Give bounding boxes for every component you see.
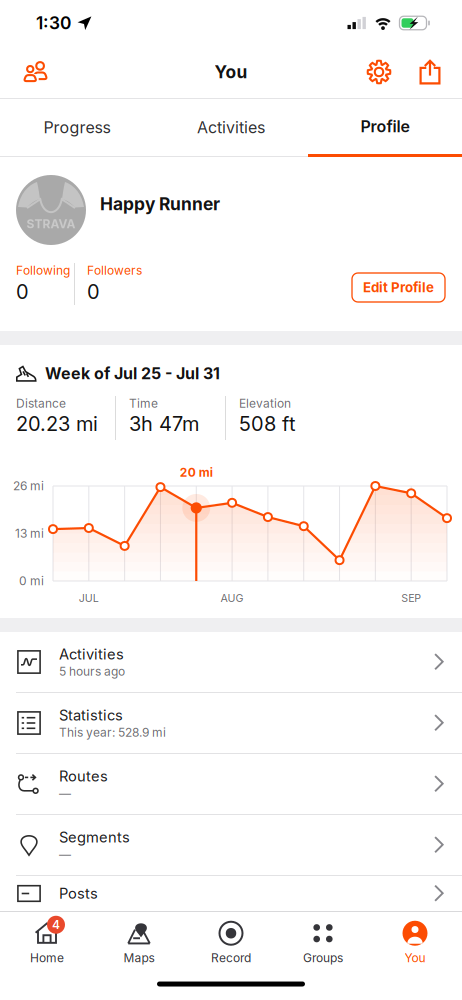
staticText: 20 mi — [180, 465, 213, 480]
staticText: Segments — [59, 828, 130, 846]
button[interactable]: Posts — [0, 876, 462, 911]
staticText: 0 mi — [19, 574, 44, 588]
staticText: Progress — [43, 118, 110, 137]
staticText: You — [214, 61, 247, 82]
staticText: Home — [30, 951, 64, 965]
staticText: Elevation — [239, 396, 291, 410]
staticText: STRAVA — [26, 217, 75, 231]
button[interactable]: Routes — [0, 754, 462, 815]
staticText: You — [404, 951, 425, 965]
button[interactable]: Activities — [0, 632, 462, 693]
staticText: Profile — [360, 117, 409, 136]
staticText: Maps — [123, 951, 154, 965]
staticText: Groups — [303, 951, 343, 965]
staticText: Happy Runner — [100, 193, 220, 214]
button[interactable]: Segments — [0, 815, 462, 876]
staticText: Activities — [197, 118, 265, 137]
button[interactable]: Profile — [308, 99, 462, 157]
staticText: Record — [211, 951, 251, 965]
staticText: 0 — [87, 279, 100, 304]
button[interactable]: Find friends — [6, 47, 64, 97]
button[interactable]: 4 — [1, 917, 93, 969]
button[interactable]: Activities — [154, 99, 308, 157]
button[interactable]: You — [369, 917, 461, 969]
staticText: — — [59, 786, 71, 801]
staticText: — — [59, 847, 71, 862]
staticText: 3h 47m — [129, 411, 199, 436]
button[interactable]: Followers — [75, 263, 149, 304]
staticText: This year: 528.9 mi — [59, 725, 166, 740]
staticText: Posts — [59, 885, 98, 902]
button[interactable]: Record — [185, 917, 277, 969]
staticText: Activities — [59, 645, 124, 663]
staticText: Following — [16, 263, 70, 277]
button[interactable]: Progress — [0, 99, 154, 157]
staticText: 13 mi — [15, 526, 44, 541]
button[interactable]: Settings — [354, 47, 404, 97]
staticText: Followers — [87, 263, 142, 277]
staticText: 4 — [52, 917, 60, 932]
button[interactable]: Following — [16, 263, 74, 304]
staticText: SEP — [401, 591, 421, 604]
staticText: 20.23 mi — [16, 411, 98, 436]
button[interactable]: Share — [404, 47, 456, 97]
staticText: Time — [129, 396, 158, 410]
staticText: Week of Jul 25 - Jul 31 — [45, 364, 220, 383]
staticText: AUG — [221, 591, 244, 604]
staticText: 0 — [16, 279, 29, 304]
staticText: 1:30 — [36, 12, 71, 33]
staticText: Routes — [59, 767, 108, 785]
button[interactable]: Edit Profile — [352, 273, 445, 302]
button[interactable]: Groups — [277, 917, 369, 969]
staticText: 26 mi — [13, 479, 44, 493]
button[interactable]: Maps — [93, 917, 185, 969]
button[interactable]: Statistics — [0, 693, 462, 754]
staticText: Edit Profile — [363, 279, 434, 295]
staticText: Statistics — [59, 706, 123, 724]
staticText: 508 ft — [239, 411, 296, 436]
staticText: Distance — [16, 396, 66, 410]
staticText: 5 hours ago — [59, 664, 125, 679]
staticText: JUL — [79, 591, 99, 604]
